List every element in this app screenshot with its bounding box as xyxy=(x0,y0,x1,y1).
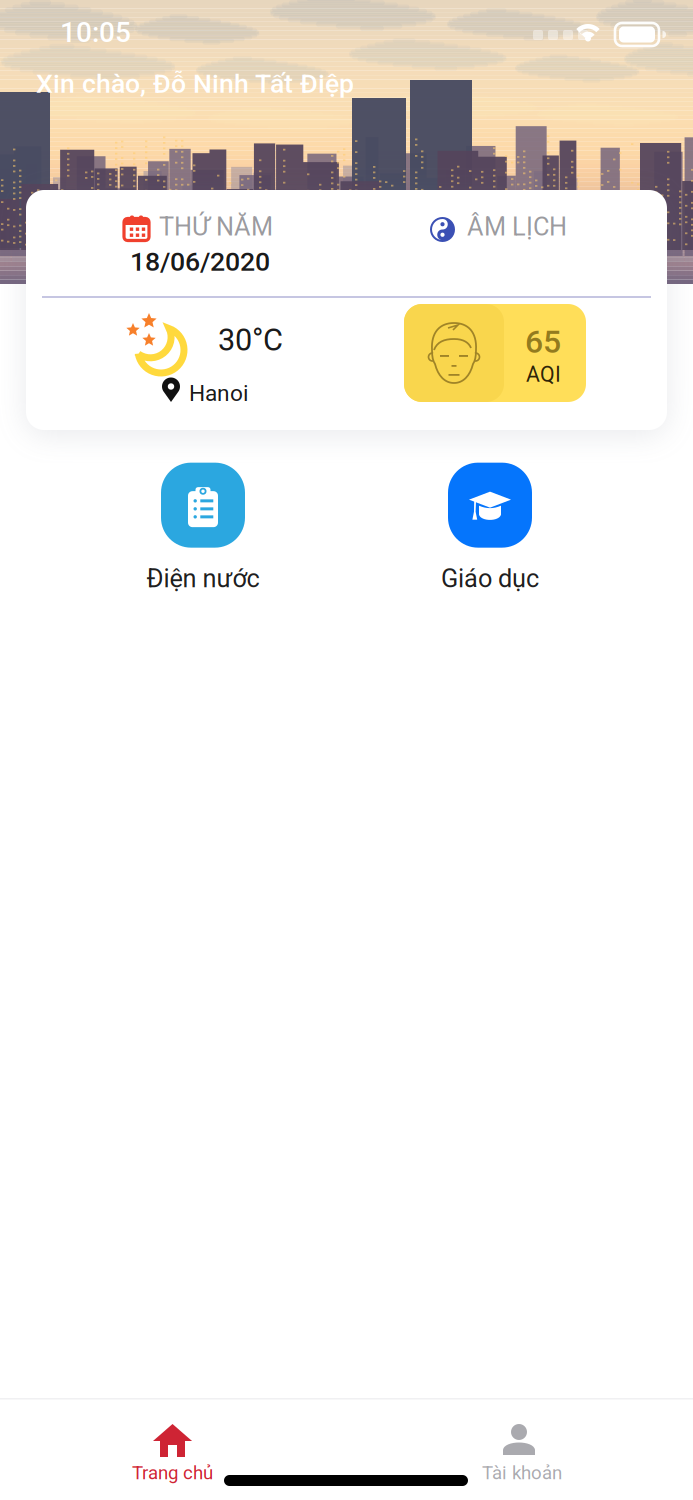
button[interactable]: Giáo dục xyxy=(377,458,603,598)
staticText: Tài khoản xyxy=(482,1462,562,1484)
staticText: 18/06/2020 xyxy=(130,246,270,277)
staticText: AQI xyxy=(526,362,561,387)
staticText: 10:05 xyxy=(60,16,131,49)
staticText: Giáo dục xyxy=(441,564,539,593)
button[interactable]: Trang chủ xyxy=(0,1400,346,1500)
button[interactable]: Tài khoản xyxy=(346,1400,693,1500)
staticText: Trang chủ xyxy=(132,1462,213,1484)
staticText: Hanoi xyxy=(189,380,249,407)
staticText: 30°C xyxy=(218,322,283,358)
staticText: THỨ NĂM xyxy=(159,212,273,242)
staticText: ÂM LỊCH xyxy=(467,212,567,242)
staticText: Điện nước xyxy=(146,564,259,593)
staticText: 65 xyxy=(525,323,561,360)
staticText: Xin chào, Đỗ Ninh Tất Điệp xyxy=(36,68,354,99)
button[interactable]: Điện nước xyxy=(90,458,316,598)
